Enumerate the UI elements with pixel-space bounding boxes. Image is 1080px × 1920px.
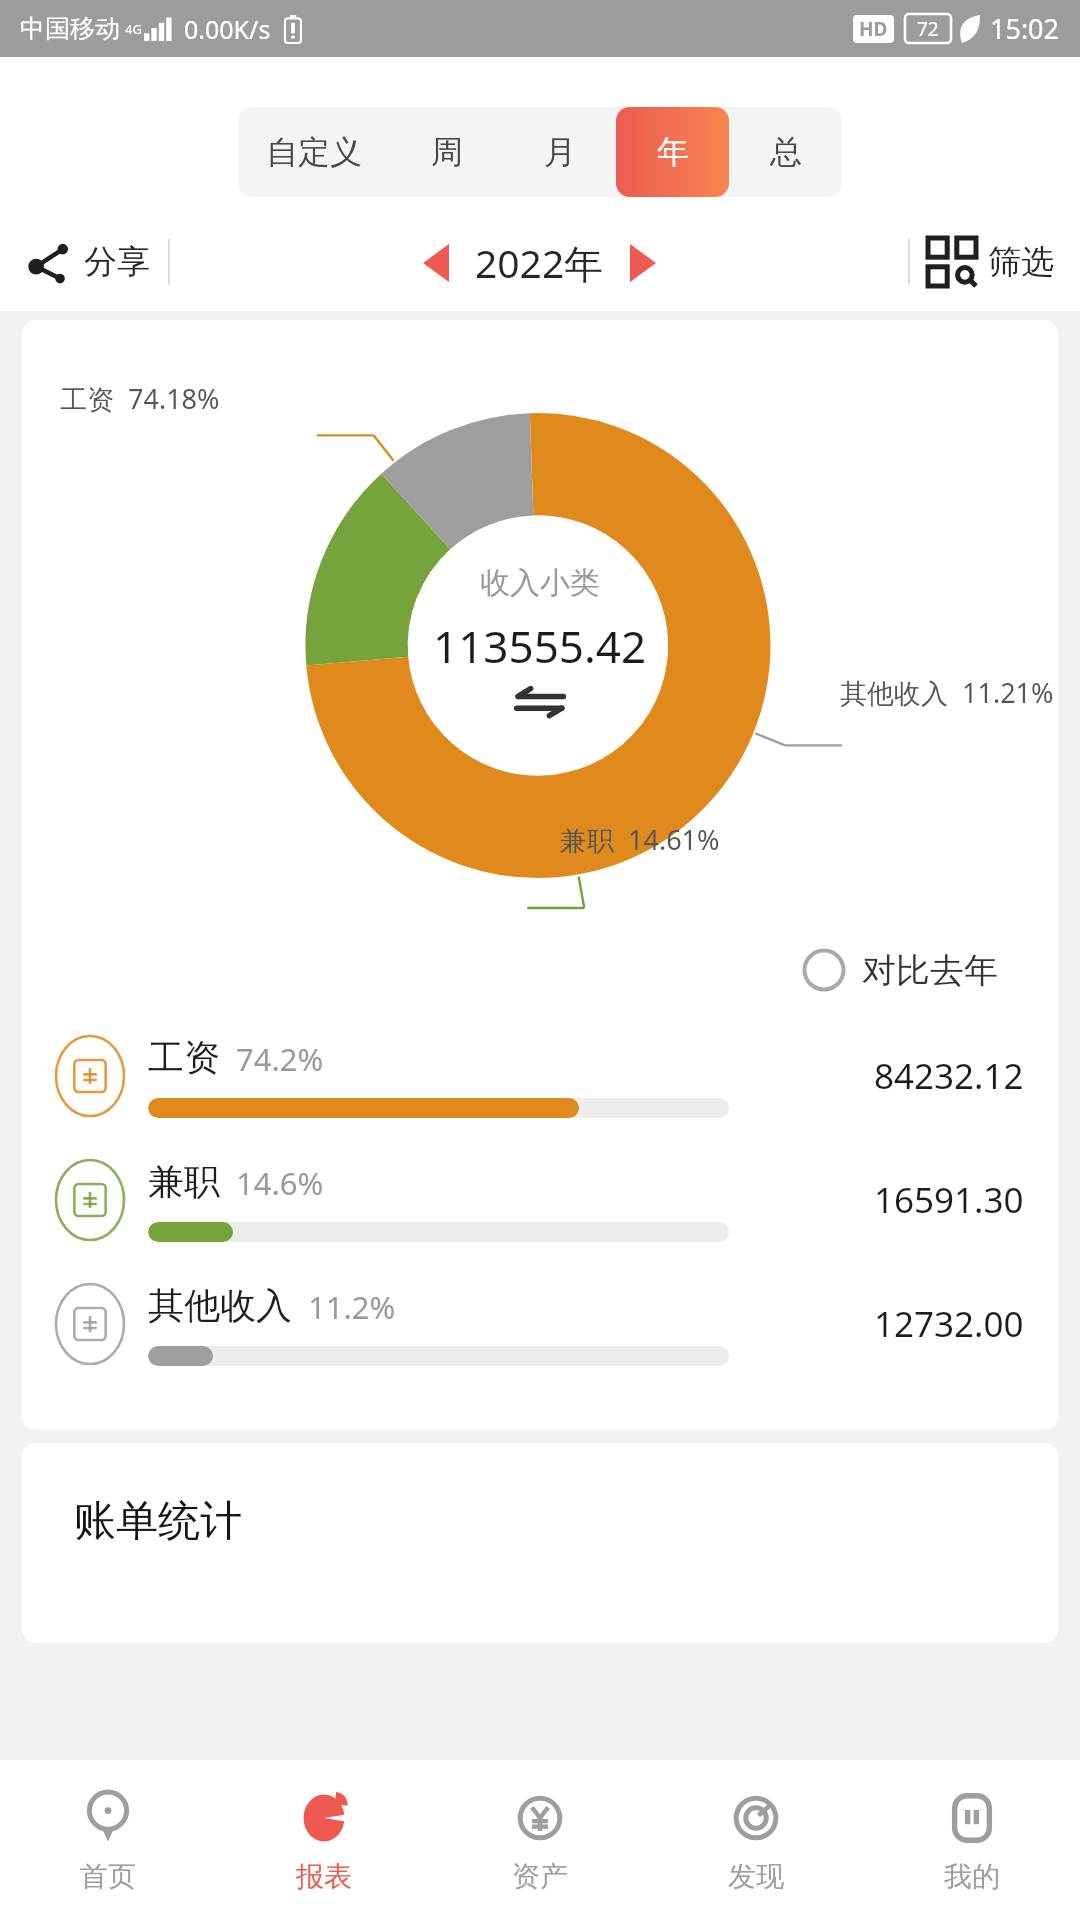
staticText: 筛选 bbox=[988, 241, 1054, 283]
button[interactable]: 兼职 bbox=[22, 1138, 1058, 1262]
staticText: 113555.42 bbox=[433, 616, 647, 676]
staticText: 2022年 bbox=[475, 236, 604, 289]
staticText: 收入小类 bbox=[480, 564, 600, 602]
staticText: 工资 74.18% bbox=[60, 380, 220, 417]
staticText: 对比去年 bbox=[862, 949, 998, 992]
button[interactable]: 资产 bbox=[432, 1760, 648, 1920]
staticText: 首页 bbox=[80, 1859, 136, 1894]
staticText: 报表 bbox=[296, 1859, 352, 1894]
button[interactable]: 上一年 bbox=[170, 236, 908, 289]
button[interactable]: 月 bbox=[503, 107, 616, 197]
staticText: HD bbox=[859, 16, 888, 42]
button[interactable]: 自定义 bbox=[238, 107, 390, 197]
staticText: 月 bbox=[544, 132, 576, 172]
button[interactable]: 总 bbox=[729, 107, 842, 197]
staticText: 其他收入 11.21% bbox=[840, 674, 1054, 711]
staticText: 周 bbox=[431, 132, 463, 172]
staticText: 账单统计 bbox=[74, 1495, 242, 1548]
other: 上一年 bbox=[423, 244, 449, 282]
button[interactable]: 我的 bbox=[864, 1760, 1080, 1920]
button[interactable]: 工资 bbox=[22, 1014, 1058, 1138]
staticText: 72 bbox=[917, 16, 939, 42]
staticText: 0.00K/s bbox=[184, 12, 271, 46]
staticText: 11.2% bbox=[308, 1286, 396, 1328]
button[interactable]: 年 bbox=[616, 107, 729, 197]
staticText: 总 bbox=[770, 132, 802, 172]
staticText: 兼职 bbox=[148, 1159, 220, 1204]
staticText: 其他收入 bbox=[148, 1283, 292, 1328]
button[interactable]: 其他收入 bbox=[22, 1262, 1058, 1386]
staticText: 4G bbox=[125, 20, 142, 38]
staticText: 自定义 bbox=[266, 132, 362, 172]
staticText: 12732.00 bbox=[874, 1300, 1024, 1348]
staticText: 14.6% bbox=[236, 1162, 324, 1204]
staticText: 兼职 14.61% bbox=[560, 821, 720, 858]
staticText: 分享 bbox=[84, 241, 150, 283]
button[interactable]: 分享 bbox=[26, 239, 168, 285]
button[interactable]: 发现 bbox=[648, 1760, 864, 1920]
other: 下一年 bbox=[630, 244, 656, 282]
button[interactable]: 对比去年 bbox=[794, 940, 1006, 1000]
staticText: 74.2% bbox=[236, 1038, 324, 1080]
button[interactable]: 报表 bbox=[216, 1760, 432, 1920]
button[interactable]: 首页 bbox=[0, 1760, 216, 1920]
staticText: 发现 bbox=[728, 1859, 784, 1894]
staticText: 16591.30 bbox=[874, 1176, 1024, 1224]
other: 分享 bbox=[26, 239, 72, 285]
staticText: 84232.12 bbox=[874, 1052, 1024, 1100]
staticText: 我的 bbox=[944, 1859, 1000, 1894]
other: 筛选 bbox=[928, 238, 976, 286]
button[interactable]: 筛选 bbox=[910, 238, 1054, 286]
staticText: 资产 bbox=[512, 1859, 568, 1894]
staticText: 年 bbox=[657, 132, 689, 172]
staticText: 工资 bbox=[148, 1035, 220, 1080]
button[interactable]: 周 bbox=[390, 107, 503, 197]
other: 切换 bbox=[514, 688, 566, 716]
staticText: 15:02 bbox=[990, 10, 1060, 47]
staticText: 中国移动 bbox=[20, 13, 120, 44]
